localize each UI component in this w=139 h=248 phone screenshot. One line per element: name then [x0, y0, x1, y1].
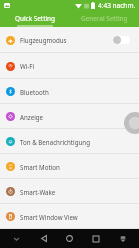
- button[interactable]: Screenshot: [113, 229, 132, 248]
- button[interactable]: Anzeige: [0, 104, 139, 129]
- staticText: Quick Setting: [15, 14, 55, 23]
- staticText: Anzeige: [20, 113, 44, 121]
- staticText: Smart-Wake: [20, 188, 56, 196]
- button[interactable]: General Setting: [69, 11, 139, 25]
- button[interactable]: Hide navigation bar: [7, 229, 26, 248]
- button[interactable]: Recent apps: [86, 229, 105, 248]
- button[interactable]: Smart Motion: [0, 154, 139, 179]
- button[interactable]: Bluetooth: [0, 79, 139, 104]
- staticText: Ton & Benachrichtigung: [20, 138, 90, 146]
- button[interactable]: Wi-Fi: [0, 53, 139, 79]
- staticText: Smart Motion: [20, 163, 60, 171]
- staticText: Wi-Fi: [20, 62, 35, 70]
- staticText: 4:43 nachm.: [98, 1, 136, 10]
- staticText: Flugzeugmodus: [20, 36, 67, 44]
- button[interactable]: Smart Window View: [0, 204, 139, 229]
- staticText: Smart Window View: [20, 213, 78, 221]
- button[interactable]: Home: [60, 229, 79, 248]
- button[interactable]: Flugzeugmodus: [0, 27, 139, 53]
- staticText: General Setting: [81, 14, 128, 23]
- button[interactable]: Quick Setting: [0, 11, 69, 25]
- staticText: Bluetooth: [20, 88, 49, 96]
- button[interactable]: Smart-Wake: [0, 179, 139, 204]
- button[interactable]: Ton & Benachrichtigung: [0, 129, 139, 154]
- button[interactable]: Back: [34, 229, 53, 248]
- other: Assistive touch: [124, 112, 139, 136]
